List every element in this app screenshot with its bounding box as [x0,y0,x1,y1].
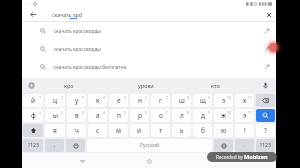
button[interactable]: ш [172,94,191,107]
staticText: 4 [103,110,106,115]
button[interactable]: Insert suggestion [259,41,275,57]
staticText: скачать кроссворды [54,46,101,53]
button[interactable]: . [235,139,254,152]
button[interactable]: Mobizen recorder [264,38,282,56]
button[interactable]: ь [172,124,191,137]
button[interactable]: д [193,109,212,122]
staticText: т [159,126,163,135]
button[interactable]: Emoji [66,139,85,152]
button[interactable]: с [88,124,107,137]
button[interactable]: м [109,124,128,137]
staticText: 11 [248,95,253,100]
button[interactable]: Search [256,109,275,122]
button[interactable]: й [23,94,43,107]
staticText: ь [180,126,184,135]
button[interactable]: х [235,94,254,107]
button[interactable]: Backspace [256,94,275,107]
staticText: 3 [82,95,85,100]
button[interactable]: у [67,94,86,107]
button[interactable]: в [67,109,86,122]
button[interactable]: э [235,109,254,122]
button[interactable]: уроки [97,78,195,93]
staticText: к [96,96,100,105]
button[interactable]: Voice input [255,78,276,93]
staticText: д [201,111,205,120]
staticText: . [244,142,246,149]
staticText: б [201,126,205,135]
button[interactable]: ж [214,109,233,122]
staticText: скачать кроссворды [54,28,101,35]
button[interactable]: е [109,94,128,107]
button[interactable]: Русский [87,139,212,152]
button[interactable]: Shift [23,124,43,137]
button[interactable]: а [88,109,107,122]
button[interactable]: ц [45,94,65,107]
staticText: 5 [124,95,127,100]
button[interactable]: Insert suggestion [259,23,275,39]
staticText: 1 [39,110,42,115]
button[interactable]: кто [195,78,235,93]
button[interactable]: л [172,109,191,122]
staticText: 10 [227,110,232,115]
button[interactable]: Home [142,154,156,168]
button[interactable]: Insert suggestion [259,59,275,75]
button[interactable]: т [151,124,170,137]
staticText: а [96,111,100,120]
button[interactable]: Back [27,8,40,21]
button[interactable]: More suggestions [22,78,41,93]
button[interactable]: и [130,124,149,137]
staticText: п [117,111,121,120]
staticText: 4 [103,95,106,100]
staticText: 1 [39,95,42,100]
button[interactable]: щ [193,94,212,107]
button[interactable]: ?123 [256,139,275,152]
staticText: у [75,96,79,105]
button[interactable]: н [130,94,149,107]
staticText: ч [75,126,79,135]
button[interactable]: Language [214,139,233,152]
button[interactable]: п [109,109,128,122]
button[interactable]: ?123 [23,139,43,152]
button[interactable]: г [151,94,170,107]
staticText: о [159,111,163,120]
button[interactable]: , [45,139,64,152]
button[interactable]: Back [75,154,89,168]
staticText: , [54,142,56,149]
staticText: м [116,126,121,135]
button[interactable]: скачать кроссворды [22,40,276,58]
button[interactable]: ы [45,109,65,122]
staticText: ф [31,111,36,120]
button[interactable]: ю [214,124,233,137]
button[interactable]: ! [235,124,254,137]
button[interactable]: я [45,124,65,137]
button[interactable]: Clear search [262,8,276,21]
staticText: е [117,96,121,105]
staticText: ?123 [28,142,39,149]
button[interactable]: скачать кроссворды бесплатно [22,58,276,76]
staticText: л [180,111,184,120]
staticText: э [243,111,247,120]
button[interactable]: р [130,109,149,122]
staticText: х [243,96,247,105]
button[interactable]: ? [256,124,275,137]
staticText: 8 [187,95,190,100]
button[interactable]: скачать кроссворды [22,22,276,40]
button[interactable]: б [193,124,212,137]
staticText: ю [221,126,227,135]
button[interactable]: к [88,94,107,107]
staticText: ы [53,111,58,120]
button[interactable]: о [151,109,170,122]
staticText: я [53,126,57,135]
staticText: ?123 [260,142,271,149]
staticText: й [31,96,36,105]
button[interactable]: ф [23,109,43,122]
button[interactable]: з [214,94,233,107]
button[interactable]: кро [41,78,97,93]
staticText: ? [264,126,267,135]
staticText: Русский [140,142,160,149]
staticText: ! [244,126,246,135]
staticText: 2 [61,110,64,115]
staticText: 9 [208,110,211,115]
button[interactable]: ч [67,124,86,137]
staticText: 7 [166,110,169,115]
